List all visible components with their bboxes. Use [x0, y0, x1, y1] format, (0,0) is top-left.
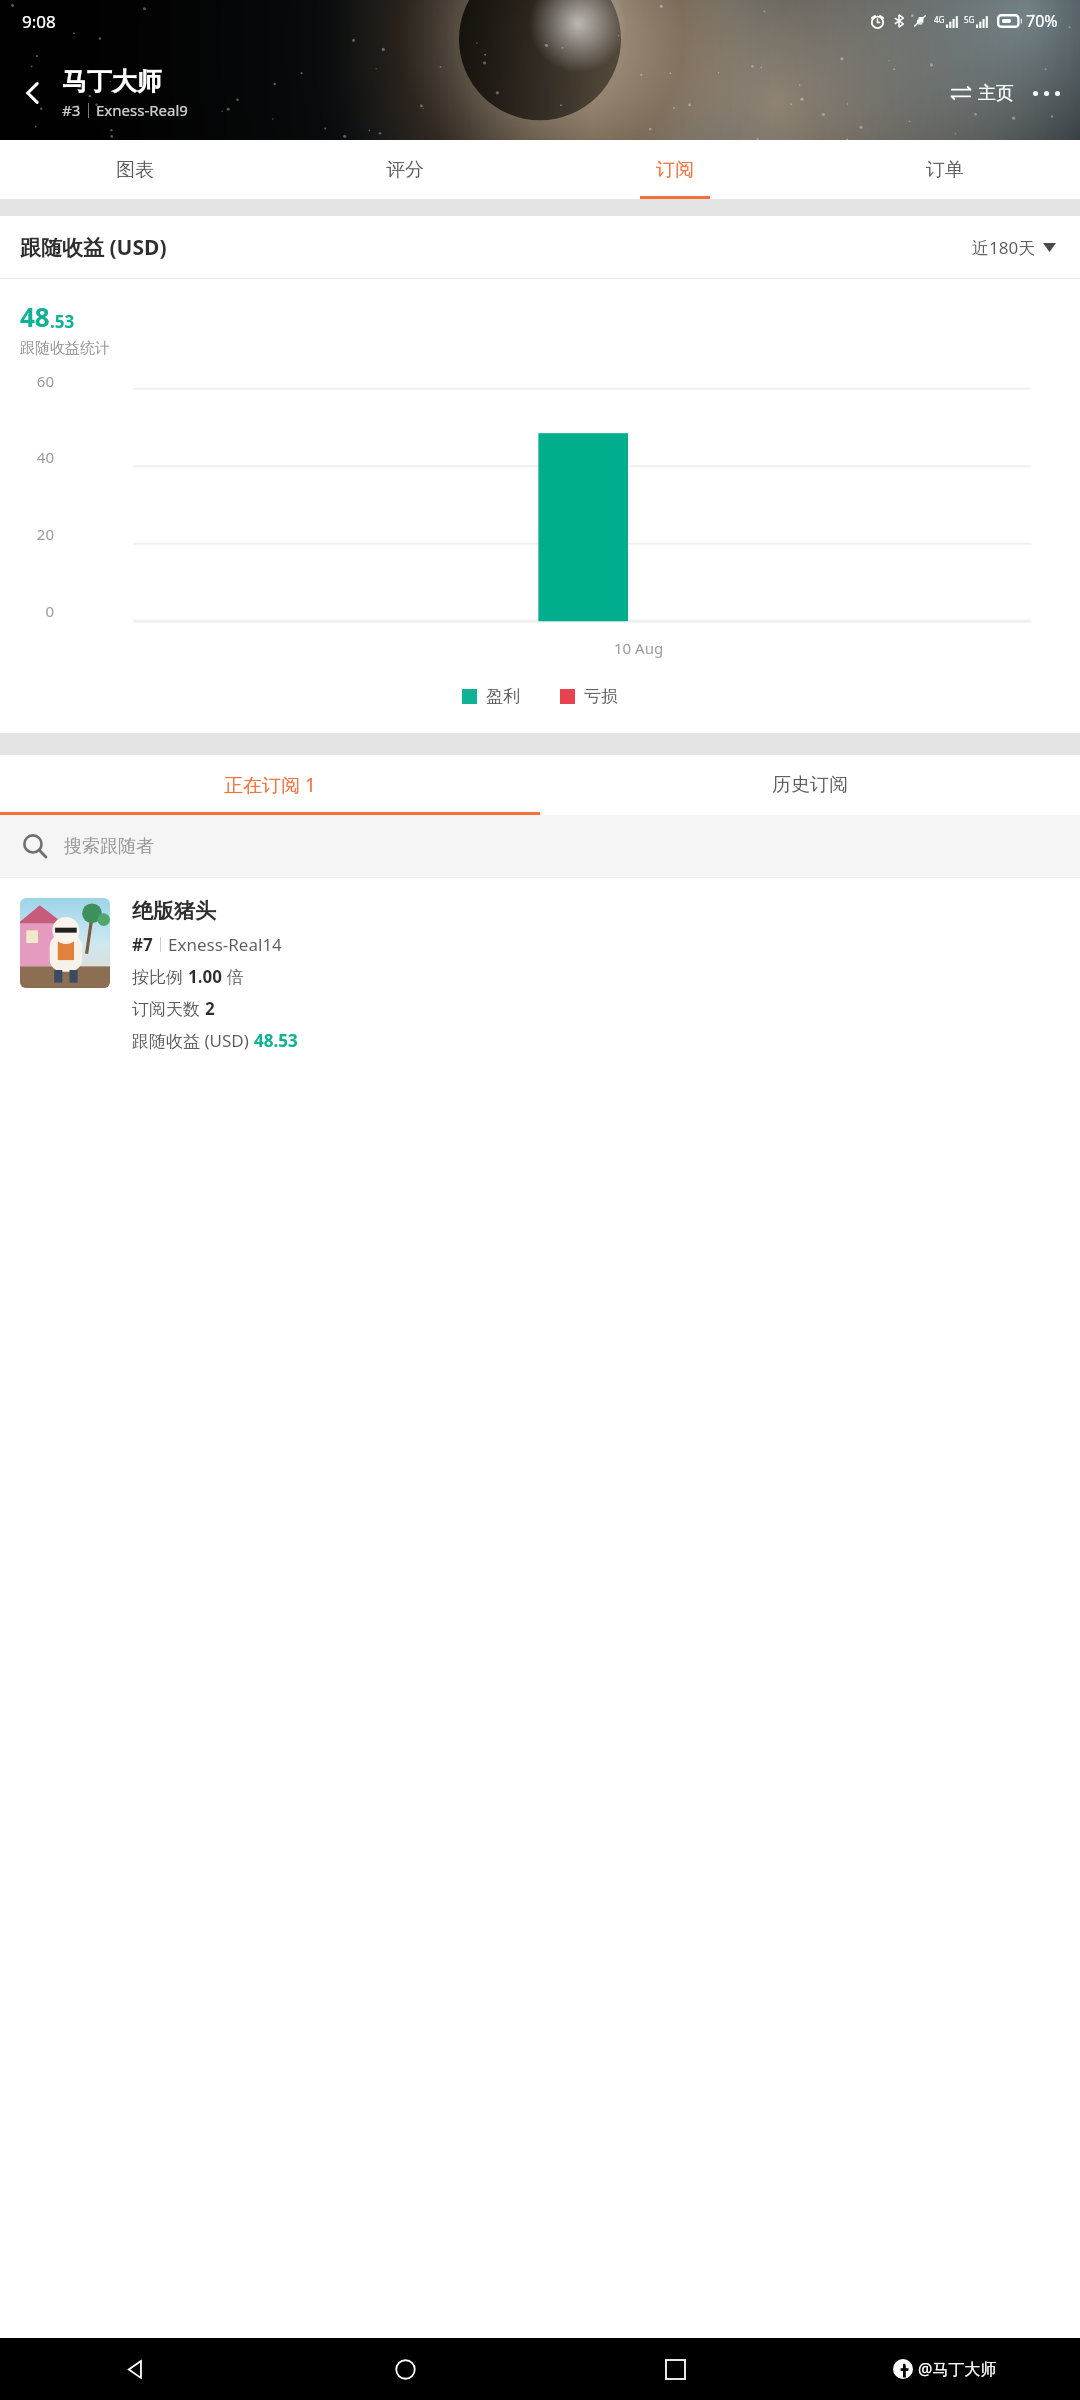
staticText: 1.00 — [188, 965, 222, 988]
staticText: 订单 — [926, 158, 964, 182]
button[interactable]: @马丁大师 — [810, 2338, 1080, 2400]
button[interactable]: 近180天 — [968, 230, 1060, 265]
button[interactable]: 绝版猪头 — [0, 878, 1080, 1072]
staticText: 48 — [20, 299, 50, 334]
staticText: 10 Aug — [614, 638, 664, 658]
staticText: #3 — [62, 100, 81, 120]
button[interactable]: 订单 — [810, 140, 1080, 199]
staticText: #7 — [132, 933, 153, 956]
staticText: 搜索跟随者 — [64, 835, 154, 858]
staticText: 亏损 — [584, 686, 618, 707]
button[interactable]: 搜索跟随者 — [0, 815, 1080, 877]
staticText: 正在订阅 1 — [224, 772, 316, 798]
staticText: 9:08 — [22, 10, 56, 33]
button[interactable]: 历史订阅 — [540, 755, 1080, 815]
button[interactable]: Back — [6, 66, 60, 120]
staticText: 60 — [0, 371, 54, 391]
staticText: 4G — [934, 14, 945, 25]
staticText: 图表 — [116, 158, 154, 182]
staticText: 2 — [205, 997, 215, 1020]
staticText: 评分 — [386, 158, 424, 182]
button[interactable]: 正在订阅 1 — [0, 755, 540, 815]
staticText: 近180天 — [972, 236, 1036, 259]
button[interactable]: 图表 — [0, 140, 270, 199]
staticText: 0 — [0, 601, 54, 621]
staticText: Exness-Real14 — [168, 933, 282, 956]
button[interactable]: Recent apps — [540, 2338, 810, 2400]
staticText: 跟随收益 (USD) — [132, 1029, 254, 1052]
staticText: 订阅 — [656, 158, 694, 182]
staticText: 历史订阅 — [772, 773, 848, 797]
staticText: 70% — [1026, 10, 1058, 32]
staticText: 20 — [0, 524, 54, 544]
staticText: 5G — [964, 14, 975, 25]
staticText: 按比例 — [132, 965, 188, 988]
staticText: 48.53 — [254, 1029, 298, 1052]
staticText: 倍 — [222, 965, 244, 988]
staticText: 绝版猪头 — [132, 898, 216, 924]
staticText: 马丁大师 — [62, 66, 162, 97]
staticText: 订阅天数 — [132, 997, 205, 1020]
staticText: 主页 — [978, 82, 1014, 105]
button[interactable]: Back — [0, 2338, 270, 2400]
staticText: 跟随收益 (USD) — [20, 233, 167, 262]
staticText: Exness-Real9 — [96, 100, 188, 120]
button[interactable]: More options — [1020, 67, 1072, 119]
staticText: 跟随收益统计 — [20, 339, 110, 358]
staticText: @马丁大师 — [918, 2358, 997, 2380]
button[interactable]: 评分 — [270, 140, 540, 199]
button[interactable]: 订阅 — [540, 140, 810, 199]
staticText: 盈利 — [486, 686, 520, 707]
staticText: 40 — [0, 447, 54, 467]
staticText: .53 — [50, 310, 75, 333]
button[interactable]: Home — [270, 2338, 540, 2400]
button[interactable]: 主页 — [943, 73, 1020, 113]
